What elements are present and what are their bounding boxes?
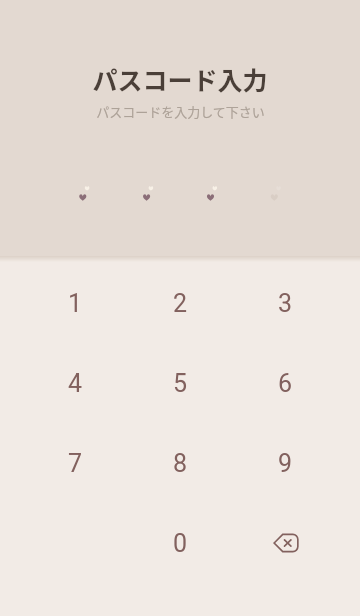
staticText: 2	[173, 289, 188, 318]
button[interactable]: 0	[128, 503, 233, 583]
button[interactable]: Delete	[233, 503, 338, 583]
button[interactable]: 9	[233, 423, 338, 503]
button[interactable]: 3	[233, 263, 338, 343]
staticText: 3	[278, 289, 293, 318]
staticText: パスコードを入力して下さい	[96, 102, 265, 121]
staticText: パスコード入力	[92, 61, 268, 97]
staticText: 6	[278, 369, 293, 398]
button[interactable]: 6	[233, 343, 338, 423]
button[interactable]: 8	[128, 423, 233, 503]
staticText: 8	[173, 449, 188, 478]
button[interactable]: 2	[128, 263, 233, 343]
staticText: 5	[173, 369, 188, 398]
staticText: 0	[173, 529, 188, 558]
staticText: 7	[68, 449, 83, 478]
staticText: 9	[278, 449, 293, 478]
button[interactable]: 1	[23, 263, 128, 343]
staticText: 4	[68, 369, 83, 398]
staticText: 1	[68, 289, 83, 318]
button[interactable]: 5	[128, 343, 233, 423]
button[interactable]: 4	[23, 343, 128, 423]
button[interactable]: 7	[23, 423, 128, 503]
other: Delete	[270, 527, 302, 559]
